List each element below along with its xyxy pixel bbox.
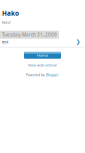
button[interactable]: Home [24,52,61,59]
staticText: Blogger. [46,73,59,77]
staticText: Powered by [26,73,45,77]
staticText: View web version [28,63,57,68]
staticText: Hako [2,9,19,18]
button[interactable]: View web version [28,63,57,68]
staticText: Hako! [2,21,11,25]
button[interactable]: test [0,39,85,47]
staticText: test [2,39,8,44]
staticText: Home [37,52,48,58]
staticText: Tuesday, March 31, 2009 [2,32,57,38]
button[interactable]: Blogger. [46,73,59,77]
